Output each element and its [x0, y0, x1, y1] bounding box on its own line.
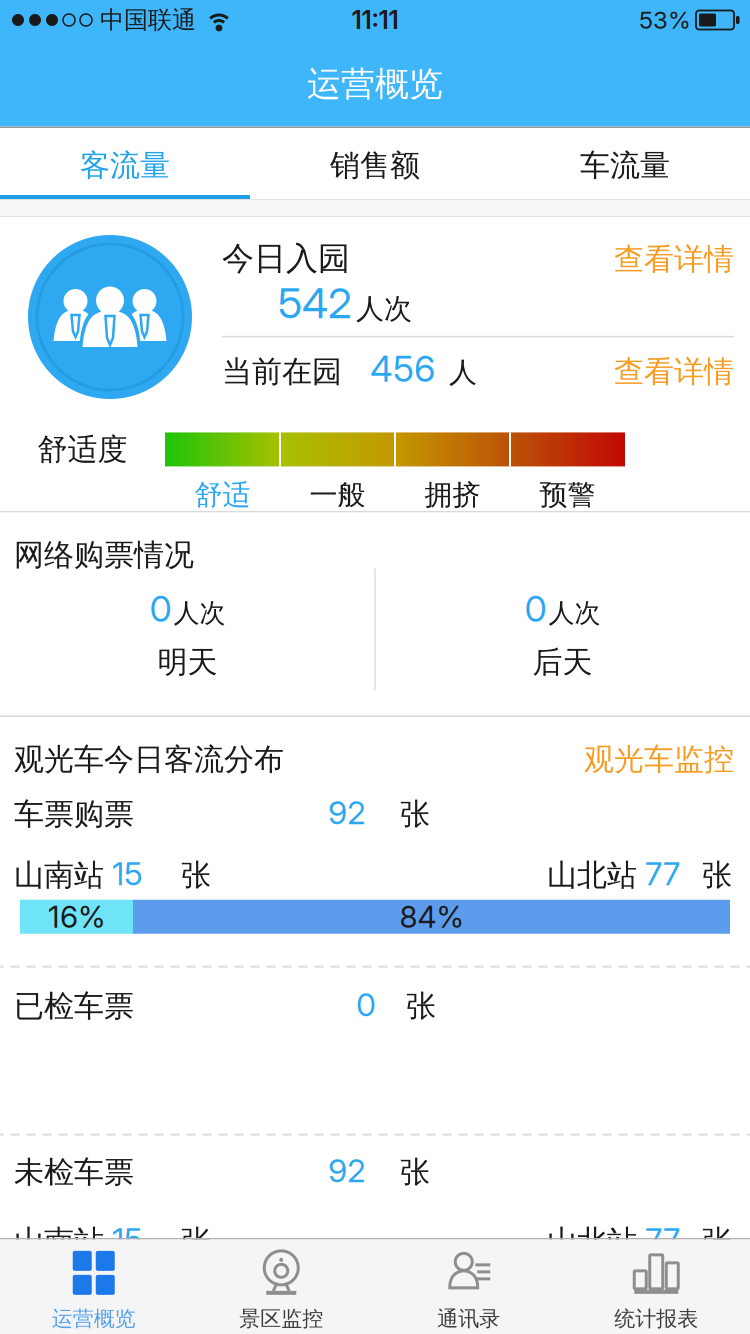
- staticText: 0: [356, 986, 376, 1023]
- staticText: 预警: [539, 478, 595, 512]
- staticText: 山北站: [547, 1223, 637, 1260]
- staticText: 未检车票: [14, 1154, 134, 1191]
- staticText: 人: [449, 355, 477, 390]
- button[interactable]: 景区监控: [187, 1239, 375, 1334]
- button[interactable]: 销售额: [250, 132, 500, 199]
- staticText: 明天: [157, 644, 217, 681]
- button[interactable]: 通讯录: [375, 1239, 562, 1334]
- staticText: 运营概览: [52, 1306, 136, 1332]
- button[interactable]: 车流量: [500, 132, 750, 199]
- button[interactable]: 运营概览: [0, 1239, 187, 1334]
- staticText: 16%: [48, 899, 105, 934]
- staticText: 一般: [309, 478, 365, 512]
- staticText: 77: [645, 1221, 680, 1258]
- staticText: 张: [702, 857, 732, 894]
- staticText: 统计报表: [614, 1306, 698, 1332]
- staticText: 运营概览: [307, 63, 443, 105]
- staticText: 当前在园: [222, 353, 342, 390]
- staticText: 张: [181, 1223, 211, 1260]
- staticText: 销售额: [330, 147, 420, 184]
- staticText: 山南站: [14, 857, 104, 894]
- staticText: 今日入园: [222, 239, 350, 278]
- staticText: 84%: [399, 899, 463, 934]
- staticText: 山北站: [547, 857, 637, 894]
- staticText: 中国联通: [100, 5, 196, 35]
- staticText: 张: [181, 857, 211, 894]
- button[interactable]: 查看详情: [614, 241, 734, 278]
- staticText: 53%: [639, 6, 691, 34]
- button[interactable]: 客流量: [0, 132, 250, 199]
- staticText: 77: [645, 855, 680, 893]
- staticText: 车流量: [580, 147, 670, 184]
- staticText: 客流量: [80, 147, 170, 184]
- staticText: 景区监控: [239, 1306, 323, 1332]
- staticText: 观光车今日客流分布: [14, 741, 284, 778]
- staticText: 山南站: [14, 1223, 104, 1260]
- staticText: 15: [112, 1221, 143, 1258]
- staticText: 查看详情: [614, 353, 734, 390]
- button[interactable]: 观光车监控: [584, 741, 734, 778]
- staticText: 人次: [548, 597, 600, 629]
- staticText: 92: [328, 794, 366, 832]
- staticText: 舒适度: [37, 431, 127, 468]
- staticText: 人次: [356, 292, 412, 326]
- staticText: 舒适: [194, 478, 250, 512]
- staticText: 查看详情: [614, 241, 734, 278]
- staticText: 张: [400, 796, 430, 833]
- staticText: 张: [702, 1223, 732, 1260]
- staticText: 0: [524, 587, 546, 630]
- staticText: 网络购票情况: [14, 536, 194, 573]
- staticText: 0: [149, 587, 171, 630]
- staticText: 拥挤: [424, 478, 480, 512]
- staticText: 15: [112, 855, 143, 893]
- staticText: 观光车监控: [584, 741, 734, 778]
- staticText: 已检车票: [14, 988, 134, 1025]
- staticText: 人次: [173, 597, 225, 629]
- staticText: 张: [406, 988, 436, 1025]
- staticText: 11:11: [351, 5, 398, 35]
- staticText: 通讯录: [437, 1306, 500, 1332]
- button[interactable]: 统计报表: [562, 1239, 750, 1334]
- staticText: 92: [328, 1152, 366, 1189]
- staticText: 542: [278, 278, 352, 328]
- staticText: 后天: [532, 644, 592, 681]
- staticText: 张: [400, 1154, 430, 1191]
- button[interactable]: 查看详情: [614, 353, 734, 390]
- staticText: 456: [370, 347, 435, 390]
- staticText: 车票购票: [14, 796, 134, 833]
